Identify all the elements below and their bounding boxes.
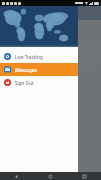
button[interactable]: Home [33,172,67,180]
other: Sign Out [4,79,11,86]
other: Messages [4,66,11,73]
button[interactable]: Live Tracking [0,50,78,63]
button[interactable]: Back [0,172,33,180]
button[interactable] [0,6,78,47]
button[interactable]: Messages [0,63,78,76]
other: Live Tracking [4,53,11,60]
staticText: Live Tracking [15,54,43,60]
button[interactable]: Sign Out [0,76,78,89]
button[interactable]: Recents [67,172,101,180]
staticText: Messages [15,67,37,73]
staticText: Sign Out [15,80,34,86]
